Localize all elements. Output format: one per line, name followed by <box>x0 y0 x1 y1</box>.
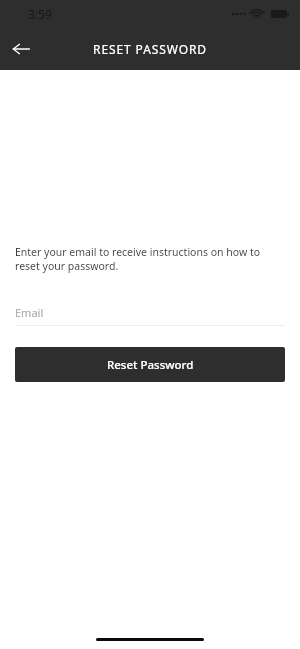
button[interactable]: Back <box>0 28 42 70</box>
staticText: 3:59 <box>28 6 52 22</box>
staticText: Reset Password <box>107 357 194 373</box>
staticText: RESET PASSWORD <box>93 41 207 57</box>
button[interactable]: Email <box>15 299 285 325</box>
button[interactable]: Reset Password <box>15 347 285 382</box>
staticText: Email <box>15 305 44 320</box>
staticText: Enter your email to receive instructions… <box>15 245 285 273</box>
